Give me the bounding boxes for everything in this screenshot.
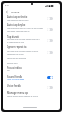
staticText: Auto-tap keybo — [7, 23, 26, 26]
staticText: 9:41 — [5, 4, 9, 7]
staticText: repeated tap is ign — [7, 53, 24, 56]
staticText: Items will be selected — [7, 57, 27, 60]
staticText: Tap keyboard keys to 100% of the screen — [7, 27, 43, 30]
staticText: tap when selected item is — [7, 30, 30, 33]
button[interactable]: Auto-tap selection — [47, 17, 53, 20]
staticText: Sound feedb — [7, 75, 23, 78]
staticText: Voice feedb — [7, 84, 21, 87]
button[interactable]: Auto-tap keyboard — [47, 28, 53, 31]
staticText: is registered by the — [7, 41, 24, 44]
staticText: Tap detected items auto — [7, 19, 29, 22]
button[interactable]: Voice feedback — [47, 86, 53, 89]
staticText: Select which items appear in the m — [7, 95, 38, 98]
button[interactable]: Ignore repeated taps — [47, 51, 53, 54]
staticText: Ignore repeat ta — [7, 45, 27, 48]
staticText: Setting — [11, 10, 20, 13]
button[interactable]: Tap duration — [47, 39, 53, 42]
staticText: Auto-tap selectio — [7, 15, 28, 18]
staticText: Tap durati — [7, 35, 20, 38]
staticText: Set how long to hold before the tap i — [7, 38, 40, 41]
staticText: Focus indica — [7, 66, 22, 69]
staticText: On — [7, 69, 10, 72]
staticText: Display and — [7, 62, 18, 65]
button[interactable]: Sound feedback — [47, 76, 53, 79]
staticText: Manage menu op — [7, 91, 29, 94]
button[interactable]: Back — [5, 10, 9, 14]
staticText: Set how long to wait before a tap is — [7, 50, 39, 53]
staticText: Hear a sound when — [7, 78, 25, 81]
